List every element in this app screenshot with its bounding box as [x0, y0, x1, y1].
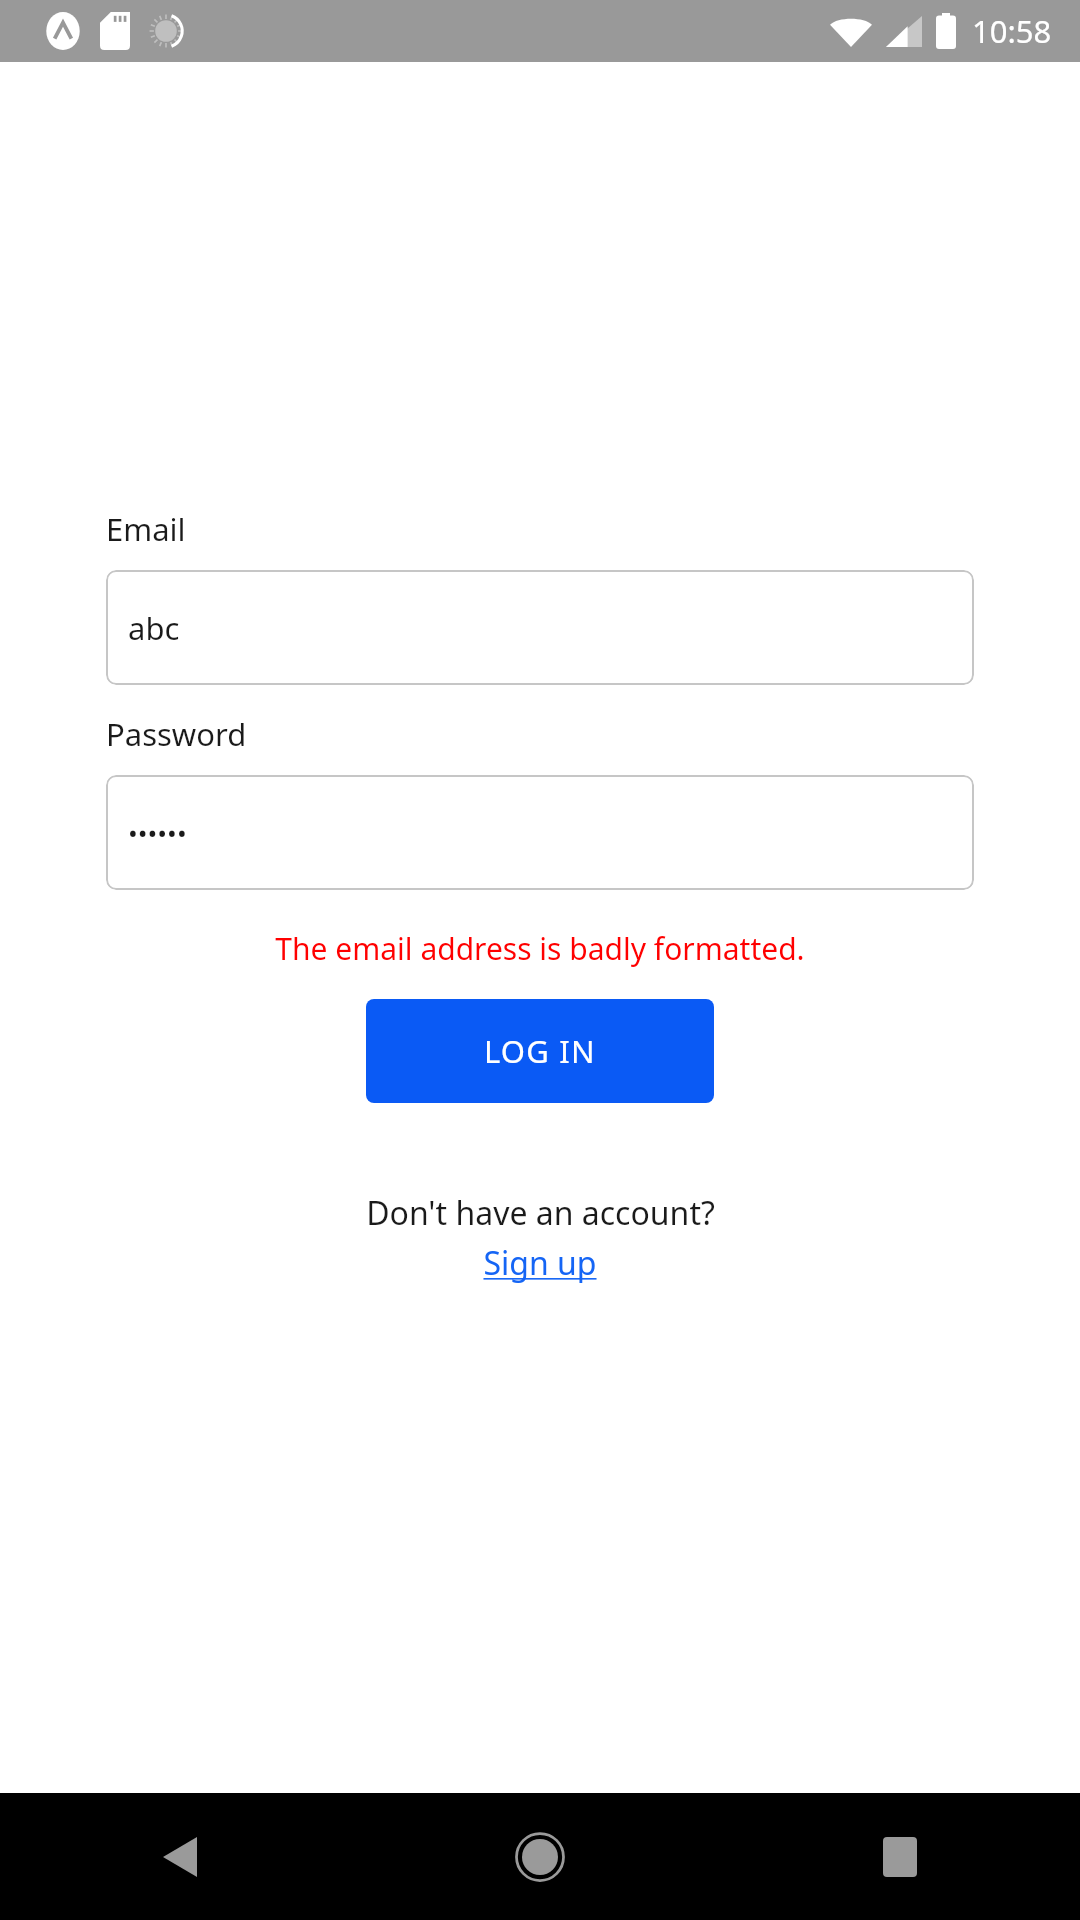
button[interactable]: LOG IN: [366, 999, 714, 1103]
button[interactable]: Sign up: [483, 1241, 597, 1285]
staticText: Password: [106, 713, 247, 755]
staticText: Email: [106, 508, 186, 550]
button[interactable]: Back: [0, 1793, 360, 1920]
button[interactable]: ••••••: [106, 775, 974, 890]
staticText: ••••••: [128, 815, 187, 850]
button[interactable]: Home: [360, 1793, 720, 1920]
button[interactable]: abc: [106, 570, 974, 685]
button[interactable]: Recents: [720, 1793, 1080, 1920]
staticText: Sign up: [483, 1241, 597, 1285]
staticText: The email address is badly formatted.: [0, 928, 1080, 969]
staticText: LOG IN: [484, 1030, 596, 1072]
staticText: 10:58: [972, 10, 1052, 52]
staticText: abc: [128, 607, 180, 649]
staticText: Don't have an account?: [366, 1191, 715, 1235]
